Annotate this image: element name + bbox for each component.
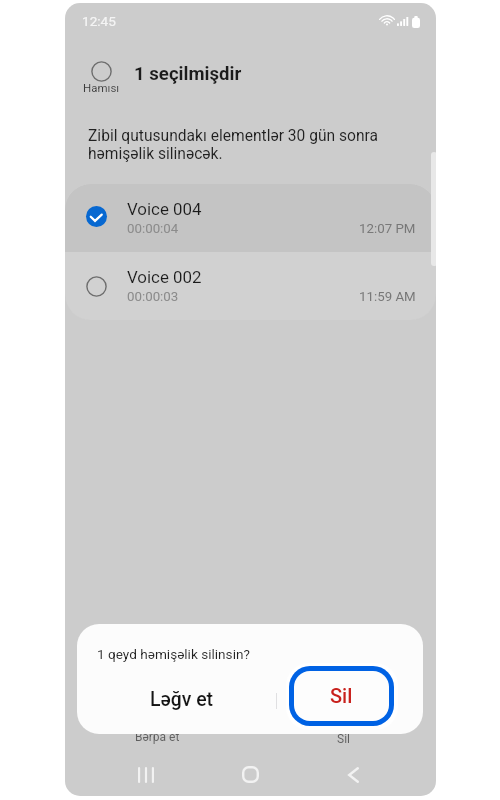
staticText: 12:07 PM xyxy=(359,221,416,237)
staticText: Hamısı xyxy=(83,81,120,94)
button[interactable]: Select all xyxy=(79,57,124,96)
staticText: 00:00:03 xyxy=(127,289,179,305)
button[interactable]: Voice 004 xyxy=(65,184,436,252)
staticText: Bərpa et xyxy=(135,730,180,744)
staticText: Zibil qutusundakı elementlər 30 gün sonr… xyxy=(88,127,400,163)
staticText: Ləğv et xyxy=(150,688,213,711)
staticText: Voice 002 xyxy=(127,267,202,287)
staticText: 1 seçilmişdir xyxy=(134,63,242,85)
button[interactable]: Bərpa et xyxy=(65,721,250,753)
staticText: Sil xyxy=(337,732,350,746)
button[interactable]: Ləğv et xyxy=(91,674,271,724)
button[interactable]: Sil xyxy=(294,671,389,721)
button[interactable]: Home xyxy=(224,753,276,796)
button[interactable]: Recents xyxy=(120,753,172,796)
staticText: 1 qeyd həmişəlik silinsin? xyxy=(97,646,250,662)
staticText: 00:00:04 xyxy=(127,221,179,237)
staticText: 12:45 xyxy=(82,13,116,29)
staticText: 11:59 AM xyxy=(359,289,416,305)
button[interactable]: Voice 002 xyxy=(65,252,436,320)
button[interactable]: Back xyxy=(327,753,379,796)
staticText: Voice 004 xyxy=(127,199,202,219)
button[interactable]: Sil xyxy=(250,721,436,753)
staticText: Sil xyxy=(330,684,353,707)
